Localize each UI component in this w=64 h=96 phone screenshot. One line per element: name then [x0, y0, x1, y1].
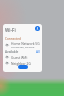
button[interactable]: Neighbor 2G	[3, 60, 42, 66]
staticText: Connected, secured	[11, 45, 35, 48]
staticText: Guest WiFi	[11, 55, 28, 59]
button[interactable]: Account	[35, 26, 40, 31]
button[interactable]: Home Network 5G	[3, 41, 42, 48]
staticText: Available	[5, 50, 19, 54]
staticText: Home Network 5G	[11, 41, 40, 45]
button[interactable]: Guest WiFi	[3, 54, 42, 60]
staticText: Neighbor 2G	[11, 61, 31, 65]
staticText: Wi-Fi	[5, 27, 16, 33]
staticText: All	[36, 50, 40, 54]
staticText: Connected	[5, 37, 21, 41]
button[interactable]: All	[36, 50, 40, 54]
button[interactable]	[18, 65, 28, 69]
